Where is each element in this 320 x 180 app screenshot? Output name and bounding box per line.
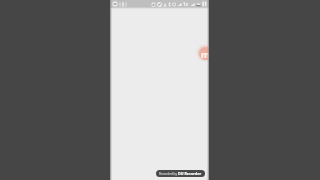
staticText: m — [201, 48, 209, 60]
staticText: Recorded by — [159, 172, 178, 176]
staticText: 1x — [183, 1, 189, 7]
button[interactable]: Chat bubble — [196, 44, 209, 62]
staticText: DU Recorder — [178, 171, 202, 176]
